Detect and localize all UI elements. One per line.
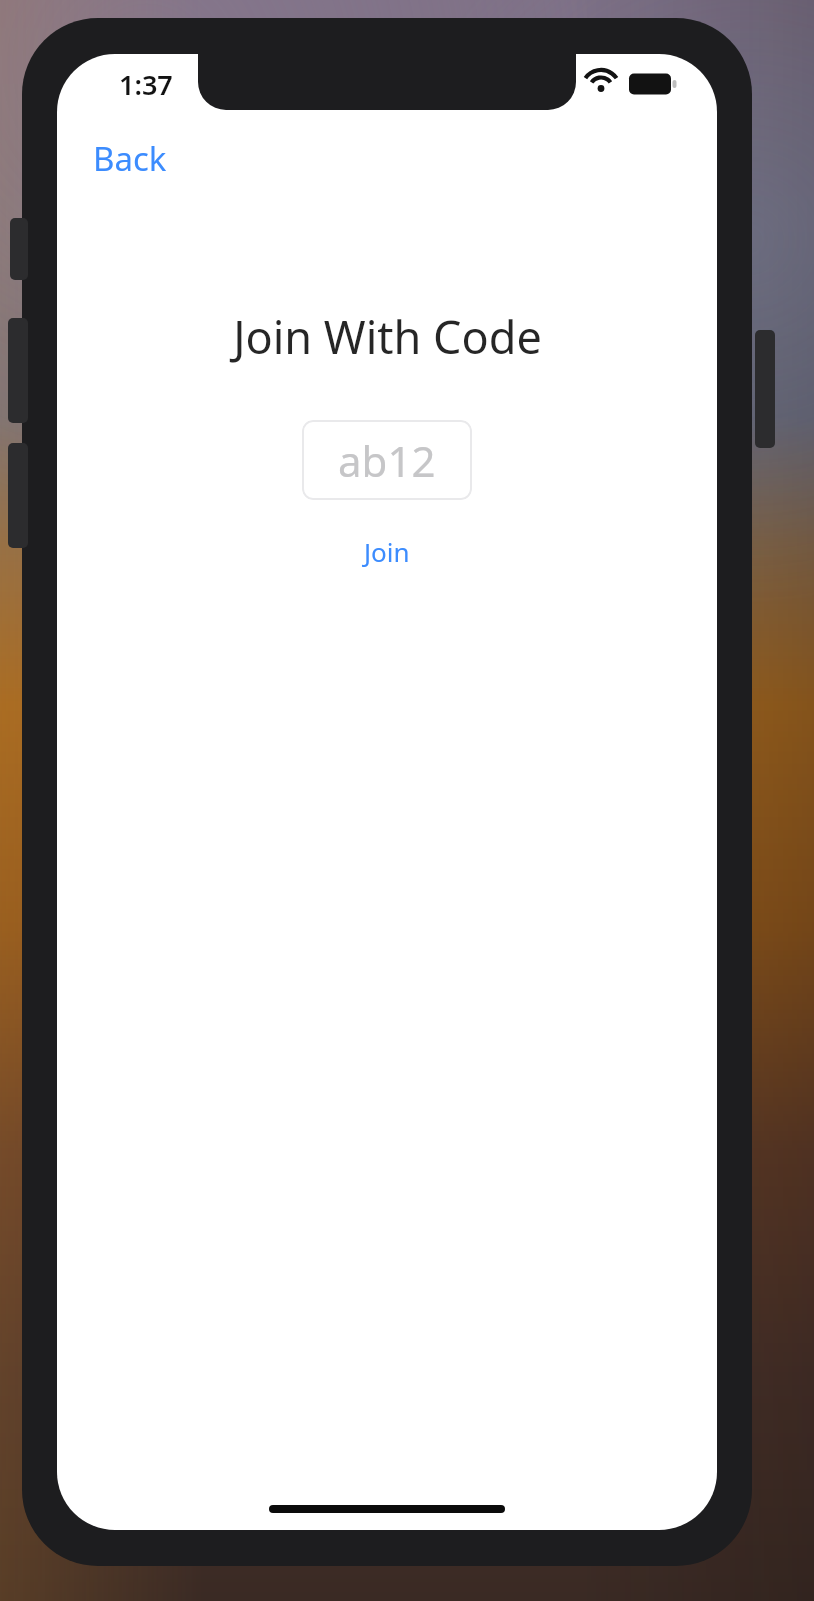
staticText: Join bbox=[364, 534, 410, 569]
staticText: Back bbox=[93, 136, 167, 181]
button[interactable]: Back bbox=[85, 130, 175, 187]
button[interactable]: Code entry field bbox=[302, 420, 472, 500]
button[interactable]: Join bbox=[344, 522, 430, 581]
staticText: ab12 bbox=[338, 432, 436, 489]
staticText: 1:37 bbox=[119, 66, 173, 103]
staticText: Join With Code bbox=[233, 306, 542, 367]
